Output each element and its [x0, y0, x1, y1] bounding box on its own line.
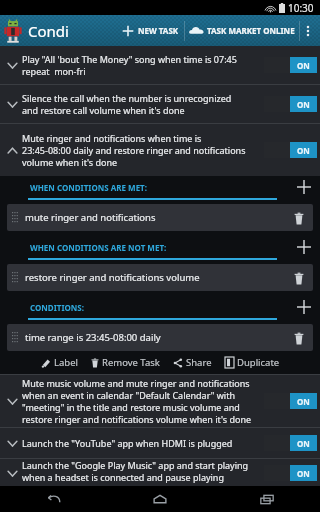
other: Expand: [2, 55, 22, 75]
staticText: volume when it's done: [22, 156, 118, 168]
staticText: Launch the "Google Play Music" app and s…: [22, 459, 249, 471]
staticText: ON: [297, 438, 310, 449]
button[interactable]: Delete: [290, 329, 308, 347]
staticText: when a headset is connected and pause pl…: [22, 471, 224, 483]
button[interactable]: Expand: [0, 459, 320, 486]
button[interactable]: Add WHEN CONDITIONS ARE MET:: [294, 177, 314, 197]
button[interactable]: Collapse: [0, 124, 320, 176]
button[interactable]: time range is 23:45-08:00 daily: [7, 324, 313, 351]
staticText: Label: [54, 356, 78, 369]
staticText: WHEN CONDITIONS ARE MET:: [30, 182, 147, 193]
staticText: NEW TASK: [138, 25, 179, 36]
button[interactable]: Duplicate: [223, 354, 282, 371]
button[interactable]: Home: [106, 486, 213, 512]
other: Expand: [2, 94, 22, 114]
staticText: Play "All 'bout The Money" song when tim…: [22, 53, 237, 65]
staticText: CONDITIONS:: [30, 302, 84, 313]
other: Expand: [2, 391, 22, 411]
button[interactable]: Expand: [0, 375, 320, 427]
button[interactable]: Add WHEN CONDITIONS ARE NOT MET:: [294, 237, 314, 257]
button[interactable]: Expand: [0, 428, 320, 458]
button[interactable]: Toggle task on: [264, 465, 317, 481]
staticText: Mute music volume and mute ringer and no…: [22, 377, 250, 389]
button[interactable]: Toggle task on: [264, 142, 317, 158]
button[interactable]: NEW TASK: [118, 15, 182, 46]
other: Expand: [2, 463, 22, 483]
staticText: and restore call volume when it's done: [22, 104, 185, 116]
staticText: ON: [297, 99, 310, 110]
staticText: time range is 23:45-08:00 daily: [25, 331, 161, 344]
staticText: restore ringer and notifications volume …: [22, 413, 252, 425]
button[interactable]: Toggle task on: [264, 96, 317, 112]
staticText: "meeting" in the title and restore music…: [22, 401, 240, 413]
staticText: repeat mon-fri: [22, 65, 86, 77]
button[interactable]: More options: [300, 15, 316, 46]
staticText: TASK MARKET ONLINE: [207, 25, 295, 36]
button[interactable]: Toggle task on: [264, 393, 317, 409]
button[interactable]: Expand: [0, 46, 320, 84]
button[interactable]: Remove Task: [89, 354, 162, 371]
button[interactable]: restore ringer and notifications volume: [7, 264, 313, 291]
other: Collapse: [2, 140, 22, 160]
staticText: when an event in calendar "Default Calen…: [22, 389, 235, 401]
button[interactable]: Share: [171, 354, 214, 371]
staticText: Share: [186, 356, 212, 369]
staticText: ON: [297, 468, 310, 479]
button[interactable]: Recent apps: [213, 486, 320, 512]
staticText: restore ringer and notifications volume: [25, 271, 200, 284]
staticText: Silence the call when the number is unre…: [22, 92, 232, 104]
button[interactable]: Delete: [290, 269, 308, 287]
staticText: ON: [297, 145, 310, 156]
staticText: ON: [297, 396, 310, 407]
button[interactable]: TASK MARKET ONLINE: [187, 15, 297, 46]
staticText: Launch the "YouTube" app when HDMI is pl…: [22, 437, 233, 449]
button[interactable]: Toggle task on: [264, 57, 317, 73]
button[interactable]: Delete: [290, 209, 308, 227]
staticText: ON: [297, 60, 310, 71]
staticText: mute ringer and notifications: [25, 211, 156, 224]
staticText: 10:30: [288, 1, 314, 15]
button[interactable]: mute ringer and notifications: [7, 204, 313, 231]
staticText: Mute ringer and notifications when time …: [22, 132, 202, 144]
staticText: Condi: [28, 21, 69, 41]
button[interactable]: Back: [0, 486, 106, 512]
button[interactable]: Add CONDITIONS:: [294, 297, 314, 317]
staticText: 23:45-08:00 daily and restore ringer and…: [22, 144, 246, 156]
staticText: Remove Task: [102, 356, 160, 369]
staticText: WHEN CONDITIONS ARE NOT MET:: [30, 242, 167, 253]
button[interactable]: Toggle task on: [264, 435, 317, 451]
button[interactable]: Label: [39, 354, 80, 371]
button[interactable]: Expand: [0, 85, 320, 123]
other: Expand: [2, 433, 22, 453]
staticText: Duplicate: [237, 356, 280, 369]
